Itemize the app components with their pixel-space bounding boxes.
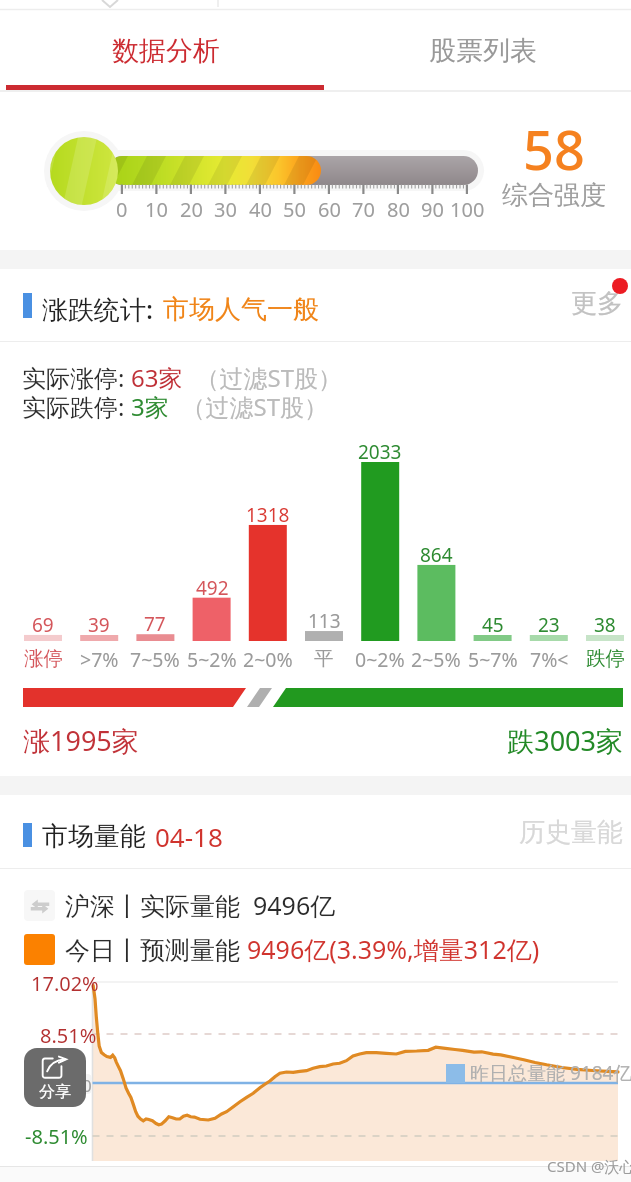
staticText: 492 — [196, 575, 229, 601]
staticText: 8.51% — [40, 1022, 97, 1049]
staticText: 9496亿(3.39%,增量312亿) — [247, 932, 540, 966]
staticText: 涨停 — [24, 646, 63, 671]
staticText: 0 — [82, 1074, 92, 1097]
staticText: 实际跌停: — [22, 390, 131, 423]
staticText: 70 — [352, 196, 375, 223]
button[interactable]: 历史量能 — [480, 812, 623, 852]
staticText: -8.51% — [25, 1123, 88, 1150]
staticText: 38 — [594, 612, 616, 638]
staticText: 昨日总量能 9184亿 — [470, 1060, 631, 1086]
staticText: 100 — [450, 196, 485, 223]
staticText: 3家 — [131, 390, 169, 423]
staticText: 7%< — [530, 646, 569, 673]
staticText: 23 — [538, 612, 560, 638]
staticText: 40 — [249, 196, 272, 223]
staticText: 平 — [314, 646, 334, 671]
staticText: 更多 — [571, 287, 623, 320]
staticText: 2033 — [358, 439, 402, 465]
staticText: 5~7% — [468, 646, 518, 673]
button[interactable]: 更多 — [560, 283, 623, 323]
button[interactable]: 分享 — [24, 1048, 86, 1107]
staticText: 17.02% — [31, 970, 99, 997]
staticText: 45 — [482, 612, 504, 638]
staticText: 04-18 — [155, 819, 223, 854]
staticText: 58 — [523, 112, 585, 186]
staticText: 113 — [308, 608, 341, 634]
staticText: 80 — [387, 196, 410, 223]
staticText: 今日丨预测量能 — [65, 932, 247, 966]
staticText: 20 — [180, 196, 203, 223]
staticText: 沪深丨实际量能 9496亿 — [65, 888, 336, 922]
staticText: 分享 — [39, 1082, 71, 1102]
staticText: （过滤ST股） — [169, 390, 328, 423]
staticText: 69 — [32, 612, 54, 638]
staticText: 39 — [88, 612, 110, 638]
staticText: 1318 — [246, 502, 290, 528]
staticText: >7% — [80, 646, 119, 673]
staticText: 历史量能 — [519, 816, 623, 849]
button[interactable]: 股票列表 — [325, 20, 631, 82]
staticText: 市场人气一般 — [163, 293, 319, 326]
staticText: 2~0% — [243, 646, 293, 673]
staticText: 7~5% — [130, 646, 180, 673]
staticText: 市场量能 — [42, 820, 146, 853]
staticText: 数据分析 — [112, 34, 220, 68]
staticText: 涨跌统计: — [42, 291, 154, 327]
staticText: 涨1995家 — [23, 722, 139, 759]
staticText: 股票列表 — [429, 34, 537, 68]
staticText: 864 — [420, 542, 453, 568]
staticText: 5~2% — [187, 646, 237, 673]
staticText: 实际涨停: — [22, 361, 131, 394]
staticText: 10 — [145, 196, 168, 223]
staticText: （过滤ST股） — [183, 361, 342, 394]
staticText: 2~5% — [411, 646, 461, 673]
button[interactable]: 数据分析 — [8, 20, 323, 82]
staticText: 63家 — [131, 361, 183, 394]
staticText: 跌停 — [586, 646, 625, 671]
staticText: 60 — [318, 196, 341, 223]
staticText: 0 — [116, 196, 128, 223]
staticText: CSDN @沃心 — [547, 1156, 631, 1176]
staticText: 30 — [214, 196, 237, 223]
staticText: 0~2% — [355, 646, 405, 673]
staticText: 跌3003家 — [507, 722, 623, 759]
staticText: 77 — [144, 611, 166, 637]
staticText: 50 — [283, 196, 306, 223]
staticText: 90 — [421, 196, 444, 223]
staticText: 综合强度 — [502, 179, 606, 212]
